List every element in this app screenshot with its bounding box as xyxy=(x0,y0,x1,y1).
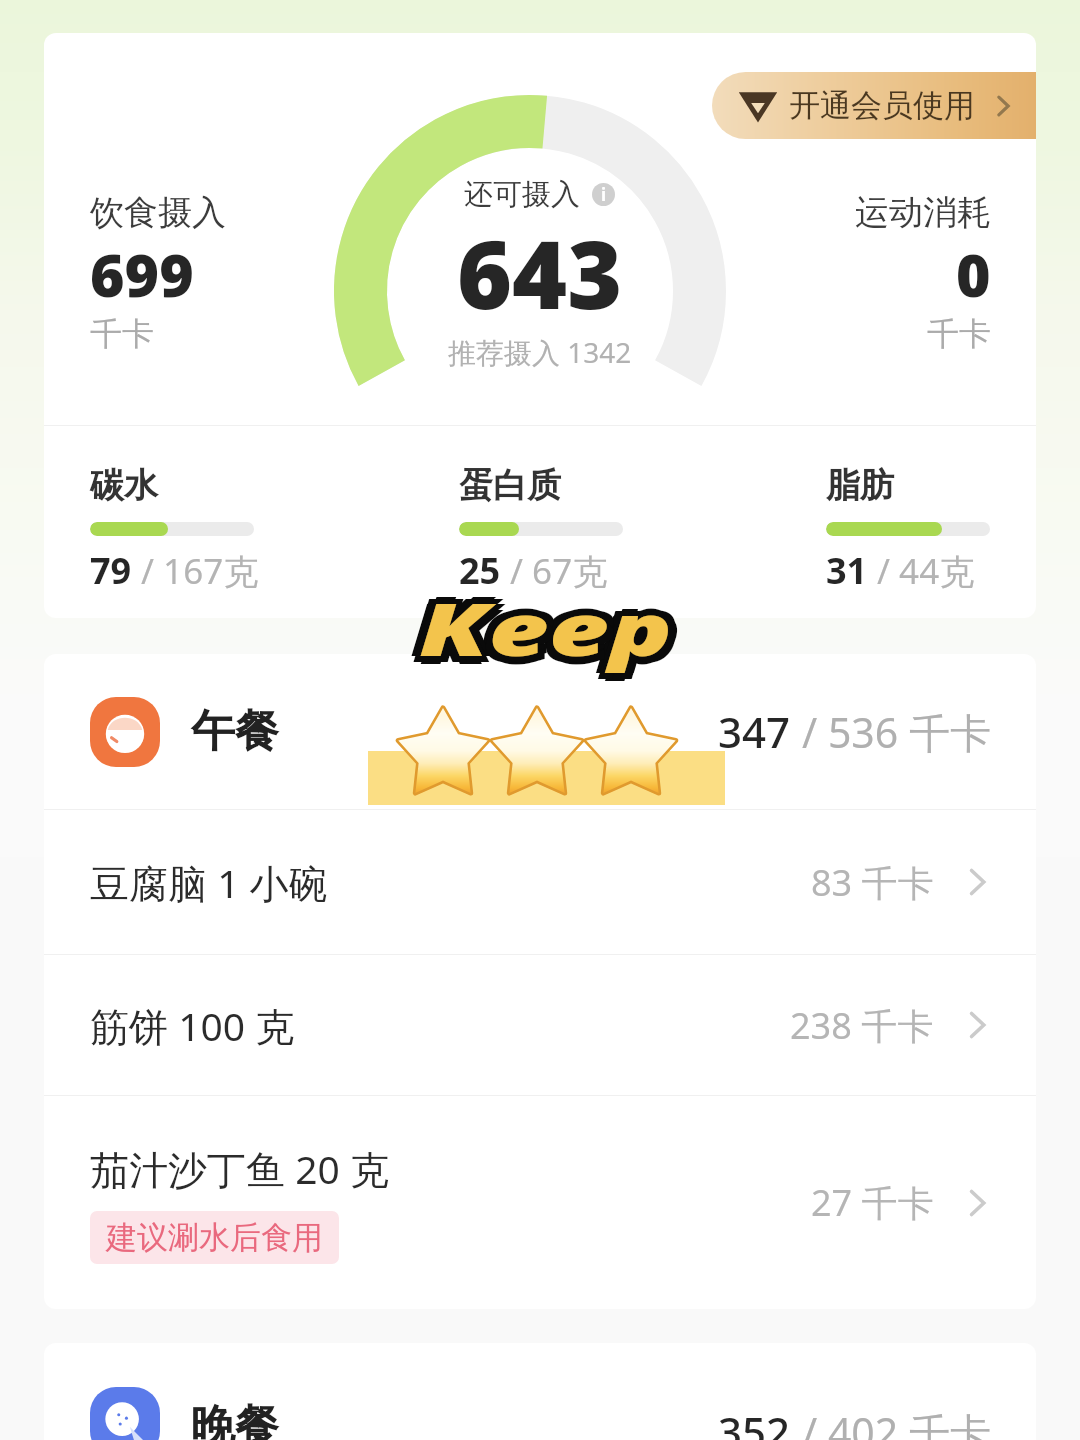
staticText: Keep xyxy=(426,584,680,684)
staticText: 茄汁沙丁鱼 20 克 xyxy=(90,1142,389,1195)
staticText: 643 xyxy=(457,209,623,337)
staticText: 31 xyxy=(826,546,868,595)
staticText: 豆腐脑 1 小碗 xyxy=(90,856,328,909)
staticText: 27 千卡 xyxy=(811,1178,934,1227)
staticText: 0 xyxy=(956,234,991,314)
staticText: / 536 千卡 xyxy=(802,704,991,760)
staticText: 352 xyxy=(718,1403,791,1440)
staticText: / 402 千卡 xyxy=(802,1404,991,1440)
staticText: 还可摄入 xyxy=(464,176,580,213)
button[interactable]: 筋饼 100 克 xyxy=(44,955,1036,1095)
staticText: 83 千卡 xyxy=(811,858,934,907)
button[interactable]: 豆腐脑 1 小碗 xyxy=(44,810,1036,954)
staticText: 晚餐 xyxy=(191,1399,279,1440)
staticText: 推荐摄入 1342 xyxy=(448,333,632,371)
button[interactable]: 开通会员使用 xyxy=(712,72,1036,139)
staticText: Keep xyxy=(412,584,666,684)
staticText: 25 xyxy=(459,546,501,595)
staticText: Keep xyxy=(412,572,666,672)
staticText: Keep xyxy=(428,578,682,678)
button[interactable]: Info xyxy=(592,183,615,206)
staticText: 238 千卡 xyxy=(790,1001,934,1050)
staticText: 千卡 xyxy=(90,314,154,354)
staticText: / 67克 xyxy=(510,547,608,595)
staticText: 饮食摄入 xyxy=(90,191,226,234)
staticText: Keep xyxy=(419,570,673,670)
staticText: 建议涮水后食用 xyxy=(106,1218,323,1257)
staticText: i xyxy=(601,183,607,206)
staticText: 开通会员使用 xyxy=(789,86,975,125)
staticText: Keep xyxy=(410,578,664,678)
staticText: 脂肪 xyxy=(826,464,894,507)
staticText: 碳水 xyxy=(90,464,158,507)
staticText: 午餐 xyxy=(191,704,279,759)
staticText: / 167克 xyxy=(141,547,259,595)
button[interactable]: 晚餐 xyxy=(90,1387,991,1440)
staticText: 79 xyxy=(90,546,132,595)
staticText: / 44克 xyxy=(877,547,975,595)
button[interactable]: 茄汁沙丁鱼 20 克 xyxy=(44,1096,1036,1309)
staticText: Keep xyxy=(426,572,680,672)
staticText: 347 xyxy=(718,703,791,760)
button[interactable]: 午餐 xyxy=(44,654,1036,809)
staticText: Keep xyxy=(419,586,673,686)
staticText: 运动消耗 xyxy=(855,191,991,234)
staticText: 蛋白质 xyxy=(459,464,561,507)
staticText: Keep xyxy=(419,578,673,678)
staticText: 千卡 xyxy=(927,314,991,354)
staticText: 699 xyxy=(90,234,194,314)
staticText: 筋饼 100 克 xyxy=(90,999,295,1052)
